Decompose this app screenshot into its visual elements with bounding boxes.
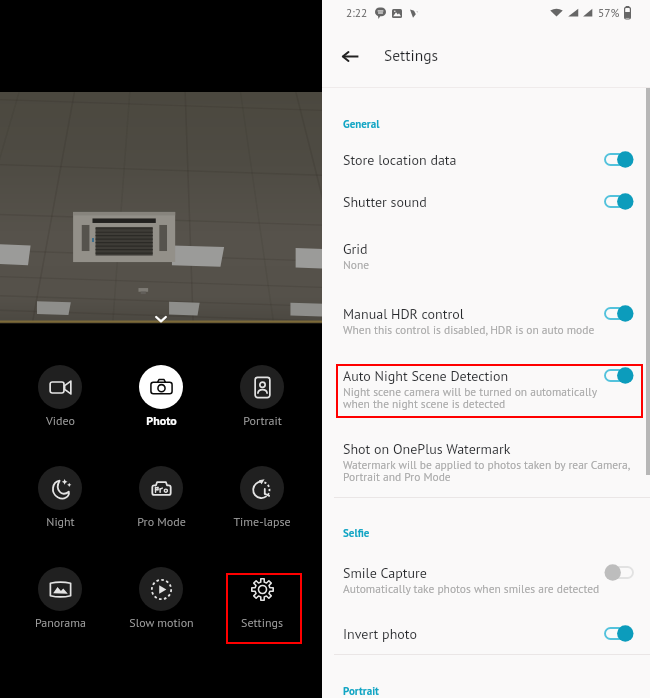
staticText: Automatically take photos when smiles ar… [343,581,600,596]
button[interactable]: On [596,617,642,649]
button[interactable]: Portrait [343,684,379,698]
staticText: Time-lapse [233,514,291,530]
button[interactable]: Settings [214,567,310,631]
staticText: Photo [146,413,177,429]
button[interactable]: Manual HDR control [322,300,650,350]
staticText: When this control is disabled, HDR is on… [343,322,595,337]
staticText: None [343,257,370,272]
button[interactable]: Off [596,556,642,588]
staticText: Shot on OnePlus Watermark [343,440,511,458]
button[interactable]: Expand options [151,309,171,329]
staticText: Settings [384,45,439,65]
button[interactable]: Video [12,365,108,429]
staticText: Invert photo [343,625,417,643]
button[interactable]: On [596,143,642,175]
button[interactable]: Smile Capture [322,559,650,609]
staticText: Slow motion [129,615,194,631]
staticText: Pro Mode [137,514,186,530]
button[interactable]: On [596,185,642,217]
button[interactable]: Grid [322,235,650,285]
button[interactable]: Auto Night Scene Detection [322,362,650,425]
button[interactable]: On [596,359,642,391]
button[interactable]: On [596,297,642,329]
staticText: 57% [598,5,620,20]
staticText: Manual HDR control [343,305,464,323]
staticText: 2:22 [346,5,368,20]
button[interactable]: Pro Mode [113,466,209,530]
button[interactable]: Selfie [343,526,370,540]
button[interactable]: Shutter sound [322,188,650,220]
button[interactable]: General [343,117,380,131]
button[interactable]: Invert photo [322,620,650,652]
staticText: Portrait and Pro Mode [343,469,451,484]
staticText: Panorama [35,615,86,631]
button[interactable]: Night [12,466,108,530]
button[interactable]: Back [332,38,368,74]
staticText: Auto Night Scene Detection [343,367,509,385]
button[interactable]: Time-lapse [214,466,310,530]
staticText: Store location data [343,151,457,169]
staticText: Watermark will be applied to photos take… [343,457,631,472]
staticText: Shutter sound [343,193,427,211]
staticText: Settings [241,615,283,631]
staticText: Video [46,413,75,429]
staticText: Smile Capture [343,564,427,582]
staticText: Night [46,514,75,530]
button[interactable]: Panorama [12,567,108,631]
button[interactable]: Slow motion [113,567,209,631]
button[interactable]: Store location data [322,146,650,178]
button[interactable]: Photo [113,365,209,429]
staticText: Grid [343,240,368,258]
button[interactable]: Shot on OnePlus Watermark [322,435,650,498]
staticText: Portrait [243,413,282,429]
staticText: when the night scene is detected [343,396,506,411]
staticText: Night scene camera will be turned on aut… [343,384,598,399]
button[interactable]: Portrait [214,365,310,429]
